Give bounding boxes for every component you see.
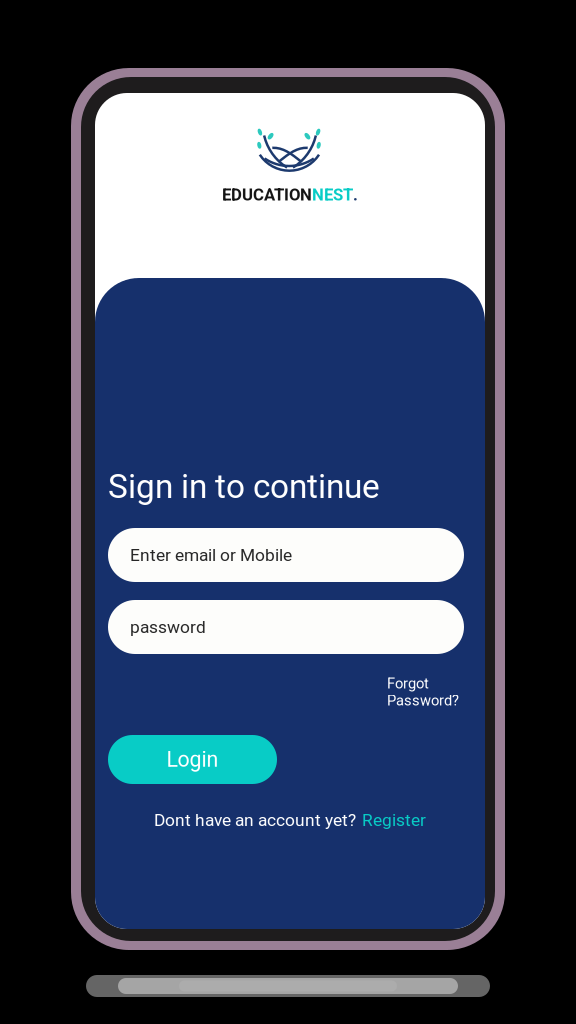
staticText: Enter email or Mobile xyxy=(130,545,292,565)
staticText: EDUCATION xyxy=(222,185,312,204)
staticText: . xyxy=(353,185,358,204)
button[interactable]: Login xyxy=(108,735,277,784)
button[interactable]: Enter email or Mobile xyxy=(108,528,464,582)
staticText: Sign in to continue xyxy=(108,467,380,506)
staticText: Forgot Password? xyxy=(387,675,459,709)
button[interactable]: password xyxy=(108,600,464,654)
staticText: Login xyxy=(166,747,218,772)
staticText: Dont have an account yet? xyxy=(154,810,356,830)
button[interactable]: Forgot Password? xyxy=(108,673,459,711)
staticText: password xyxy=(130,617,206,637)
staticText: NEST xyxy=(312,185,353,204)
button[interactable]: Dont have an account yet? xyxy=(95,806,485,834)
staticText: Register xyxy=(362,810,426,830)
